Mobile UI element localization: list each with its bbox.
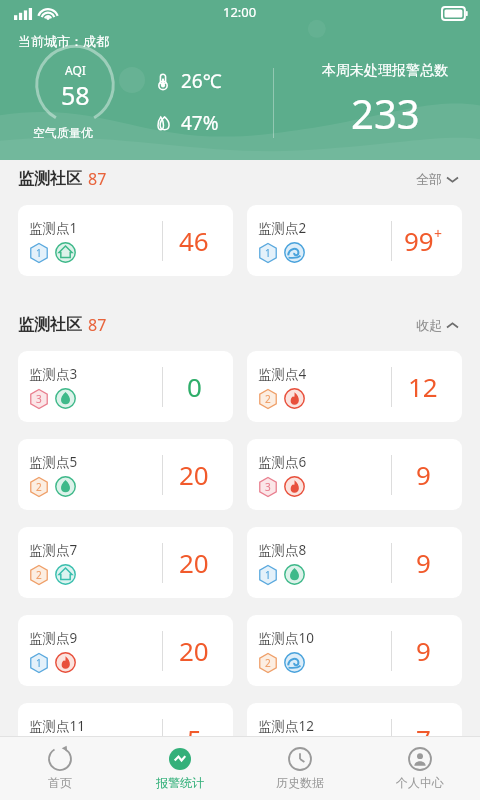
staticText: 20 xyxy=(179,457,209,492)
staticText: 26℃ xyxy=(181,68,222,94)
staticText: 全部 xyxy=(416,171,442,187)
button[interactable]: 监测点10 xyxy=(247,615,462,686)
button[interactable]: 报警统计 xyxy=(120,737,240,800)
staticText: 3 xyxy=(265,480,271,494)
staticText: 12:00 xyxy=(223,3,257,21)
staticText: 1 xyxy=(265,568,271,582)
button[interactable]: 监测点1 xyxy=(18,205,233,276)
staticText: 58 xyxy=(61,78,90,112)
staticText: 个人中心 xyxy=(396,775,444,790)
button[interactable]: 历史数据 xyxy=(240,737,360,800)
staticText: 监测点5 xyxy=(29,453,78,471)
staticText: 监测点9 xyxy=(29,629,78,647)
button[interactable]: 收起 xyxy=(412,311,462,339)
staticText: 87 xyxy=(88,168,107,190)
staticText: 9 xyxy=(416,457,431,492)
staticText: 监测点3 xyxy=(29,365,78,383)
staticText: 监测点10 xyxy=(258,629,314,647)
staticText: 监测点4 xyxy=(258,365,307,383)
staticText: 空气质量优 xyxy=(33,125,93,140)
button[interactable]: 监测点8 xyxy=(247,527,462,598)
button[interactable]: 监测点2 xyxy=(247,205,462,276)
staticText: 监测社区 xyxy=(18,315,82,335)
staticText: 5 xyxy=(187,721,202,756)
staticText: 2 xyxy=(265,392,271,406)
staticText: 9 xyxy=(416,545,431,580)
staticText: 当前城市：成都 xyxy=(18,33,109,49)
staticText: 本周未处理报警总数 xyxy=(322,62,448,80)
staticText: 1 xyxy=(36,656,42,670)
staticText: 7 xyxy=(416,721,431,756)
staticText: 监测点11 xyxy=(29,717,85,735)
button[interactable]: 监测点3 xyxy=(18,351,233,422)
staticText: 46 xyxy=(179,223,209,258)
staticText: 233 xyxy=(351,86,420,140)
staticText: 0 xyxy=(187,369,202,404)
staticText: 报警统计 xyxy=(156,775,204,790)
button[interactable]: 首页 xyxy=(0,737,120,800)
staticText: 监测点12 xyxy=(258,717,314,735)
button[interactable]: 监测点5 xyxy=(18,439,233,510)
button[interactable]: 监测点4 xyxy=(247,351,462,422)
staticText: 监测点6 xyxy=(258,453,307,471)
staticText: 监测社区 xyxy=(18,169,82,189)
staticText: AQI xyxy=(65,62,86,78)
staticText: 20 xyxy=(179,545,209,580)
staticText: 收起 xyxy=(416,317,442,333)
staticText: 监测点7 xyxy=(29,541,78,559)
button[interactable]: 监测点9 xyxy=(18,615,233,686)
staticText: 2 xyxy=(36,568,42,582)
button[interactable]: 全部 xyxy=(412,165,462,193)
staticText: 12 xyxy=(408,369,438,404)
button[interactable]: 监测点7 xyxy=(18,527,233,598)
staticText: 2 xyxy=(36,480,42,494)
button[interactable]: 监测点6 xyxy=(247,439,462,510)
staticText: 首页 xyxy=(48,775,72,790)
button[interactable]: 个人中心 xyxy=(360,737,480,800)
staticText: 监测点1 xyxy=(29,219,78,237)
button[interactable]: 监测点12 xyxy=(247,703,462,774)
staticText: 9 xyxy=(416,633,431,668)
staticText: 47% xyxy=(181,110,219,136)
staticText: + xyxy=(434,224,443,243)
staticText: 监测点2 xyxy=(258,219,307,237)
staticText: 监测点8 xyxy=(258,541,307,559)
staticText: 3 xyxy=(36,392,42,406)
staticText: 20 xyxy=(179,633,209,668)
staticText: 1 xyxy=(265,246,271,260)
staticText: 99 xyxy=(404,223,434,258)
button[interactable]: 监测点11 xyxy=(18,703,233,774)
staticText: 1 xyxy=(36,246,42,260)
staticText: 87 xyxy=(88,314,107,336)
staticText: 历史数据 xyxy=(276,775,324,790)
staticText: 2 xyxy=(265,656,271,670)
